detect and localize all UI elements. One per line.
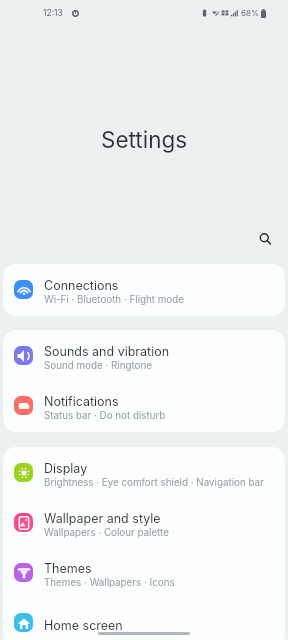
staticText: Wi-Fi · Bluetooth · Flight mode [44, 294, 184, 306]
staticText: Sound mode · Ringtone [44, 360, 152, 372]
button[interactable]: Wallpaper and style [3, 497, 285, 547]
staticText: Connections [44, 278, 119, 293]
button[interactable]: Home screen [3, 597, 285, 640]
staticText: Brightness · Eye comfort shield · Naviga… [44, 477, 264, 489]
button[interactable]: Display [3, 447, 285, 497]
staticText: 68% [241, 8, 259, 18]
staticText: 12:13 [43, 8, 63, 18]
staticText: Settings [101, 126, 188, 153]
staticText: Status bar · Do not disturb [44, 410, 166, 422]
staticText: Notifications [44, 394, 119, 409]
staticText: Home screen [44, 618, 123, 633]
staticText: Display [44, 461, 88, 476]
button[interactable]: Themes [3, 547, 285, 597]
staticText: Themes · Wallpapers · Icons [44, 577, 175, 589]
button[interactable]: Search [252, 226, 277, 251]
button[interactable]: Notifications [3, 380, 285, 430]
button[interactable]: Sounds and vibration [3, 330, 285, 380]
button[interactable]: Connections [3, 264, 285, 314]
staticText: Wallpapers · Colour palette [44, 527, 169, 539]
staticText: Sounds and vibration [44, 344, 170, 359]
staticText: Wallpaper and style [44, 511, 161, 526]
staticText: Themes [44, 561, 92, 576]
